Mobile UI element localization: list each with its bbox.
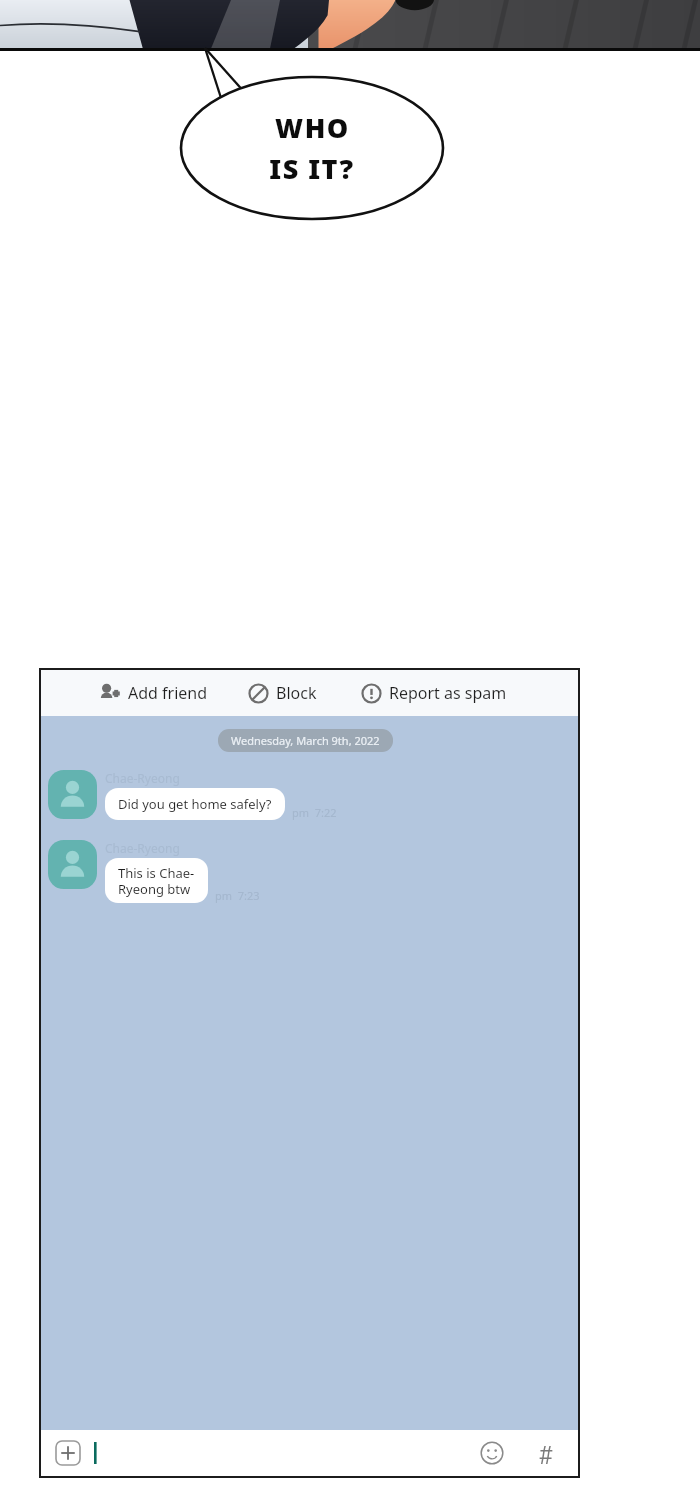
staticText: Wednesday, March 9th, 2022 (231, 733, 380, 748)
staticText: Add friend (128, 682, 208, 704)
staticText: # (539, 1437, 553, 1469)
button[interactable]: Report as spam (357, 676, 511, 710)
staticText: pm 7:23 (215, 888, 260, 903)
staticText: pm 7:22 (292, 805, 337, 820)
staticText: Block (276, 682, 317, 704)
button[interactable]: Add attachment (53, 1438, 83, 1468)
button[interactable]: Add friend (93, 675, 212, 711)
staticText: Report as spam (389, 682, 507, 704)
staticText: Chae-Ryeong (105, 770, 180, 786)
button[interactable]: Emoji (476, 1437, 508, 1469)
button[interactable]: Hashtag (530, 1437, 562, 1469)
staticText: Chae-Ryeong (105, 840, 180, 856)
staticText: IS IT? (269, 150, 355, 187)
staticText: WHO (275, 109, 350, 146)
staticText: Did you get home safely? (118, 795, 272, 813)
staticText: This is Chae- Ryeong btw (118, 864, 195, 897)
button[interactable]: Block (244, 676, 321, 710)
